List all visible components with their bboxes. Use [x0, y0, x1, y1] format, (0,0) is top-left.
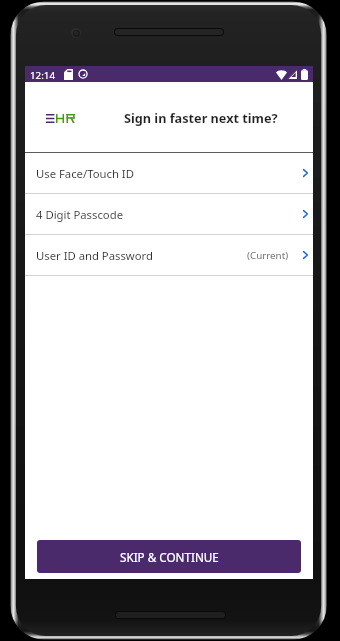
staticText: 12:14 — [30, 69, 56, 82]
button[interactable]: Use Face/Touch ID — [25, 153, 313, 193]
button[interactable]: Skip and continue — [37, 540, 301, 573]
staticText: 4 Digit Passcode — [36, 207, 124, 222]
staticText: SKIP & CONTINUE — [120, 549, 219, 565]
staticText: User ID and Password — [36, 248, 153, 263]
button[interactable]: User ID and Password — [25, 235, 313, 275]
staticText: Sign in faster next time? — [124, 109, 278, 126]
staticText: Use Face/Touch ID — [36, 166, 134, 181]
staticText: (Current) — [247, 249, 289, 262]
button[interactable]: 4 Digit Passcode — [25, 194, 313, 234]
